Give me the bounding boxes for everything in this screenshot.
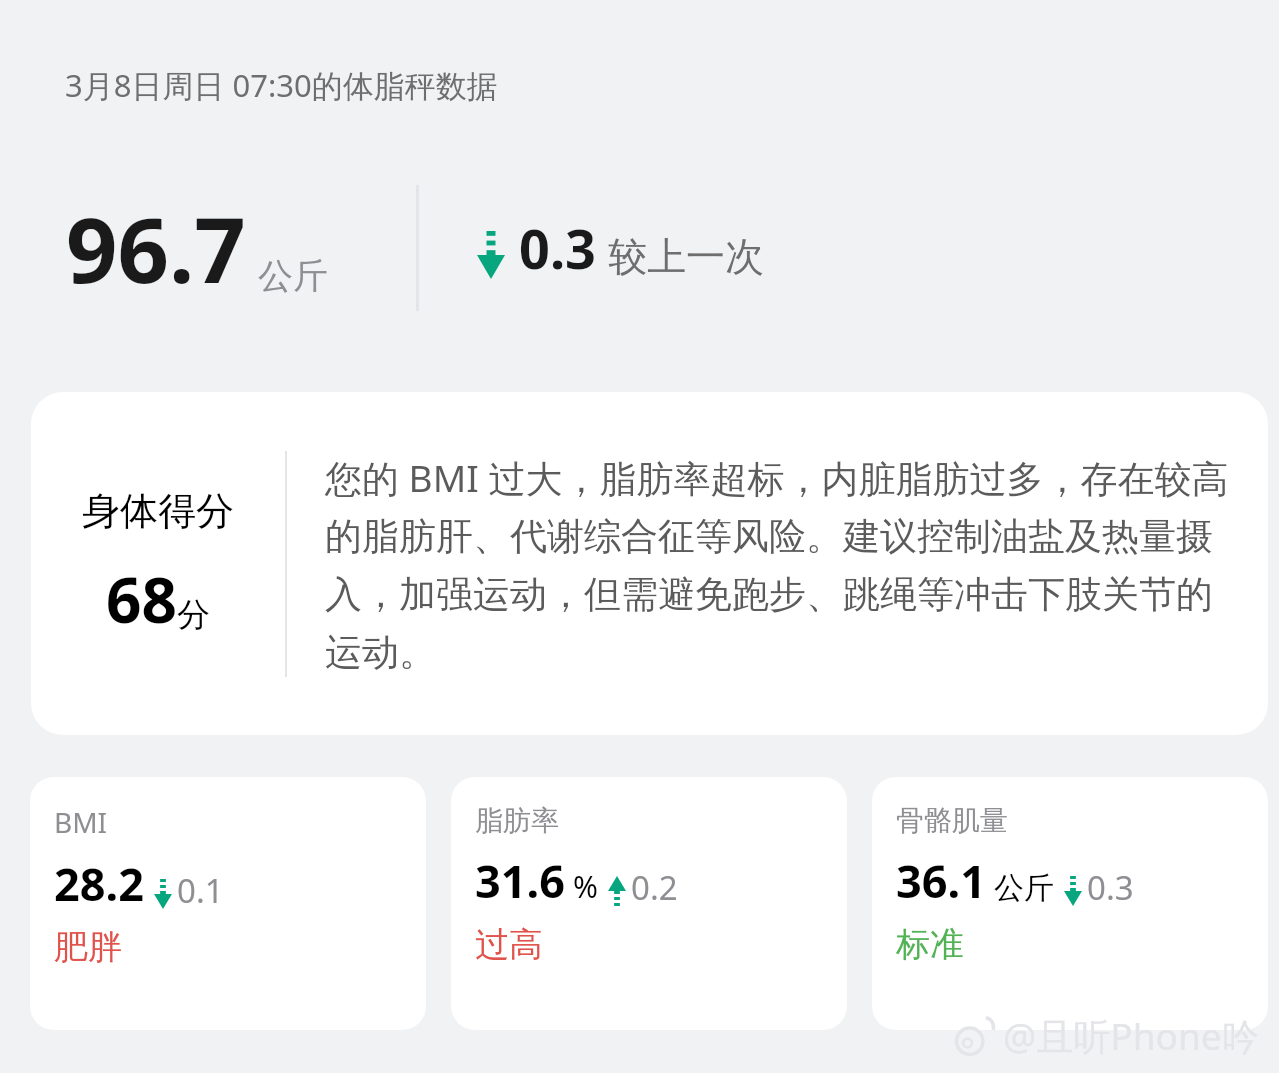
staticText: 骨骼肌量 (896, 803, 1008, 838)
staticText: 过高 (475, 923, 543, 966)
staticText: 分 (177, 594, 210, 636)
staticText: 3月8日周日 07:30的体脂秤数据 (65, 64, 498, 106)
staticText: 您的 BMI 过大，脂肪率超标，内脏脂肪过多，存在较高的脂肪肝、代谢综合征等风险… (325, 452, 1246, 676)
staticText: 0.3 (519, 211, 596, 285)
staticText: 28.2 (54, 853, 144, 914)
staticText: % (573, 866, 598, 907)
staticText: 身体得分 (82, 487, 234, 535)
staticText: 31.6 (475, 850, 565, 911)
staticText: @且听Phone吟 (1003, 1010, 1259, 1061)
staticText: 较上一次 (608, 232, 764, 281)
button[interactable]: 脂肪率 (451, 777, 847, 1030)
staticText: BMI (54, 803, 108, 841)
staticText: 肥胖 (54, 926, 122, 969)
staticText: 公斤 (258, 254, 328, 298)
staticText: 36.1 (896, 850, 986, 911)
staticText: 96.7 (66, 187, 246, 310)
staticText: 68 (106, 557, 177, 641)
staticText: 0.3 (1087, 865, 1134, 910)
staticText: 0.1 (177, 868, 224, 913)
staticText: 标准 (896, 923, 964, 966)
staticText: 脂肪率 (475, 803, 559, 838)
staticText: 0.2 (631, 865, 678, 910)
button[interactable]: 身体得分 (31, 392, 1268, 735)
button[interactable]: BMI (30, 777, 426, 1030)
button[interactable]: 骨骼肌量 (872, 777, 1268, 1030)
staticText: 公斤 (994, 869, 1054, 907)
